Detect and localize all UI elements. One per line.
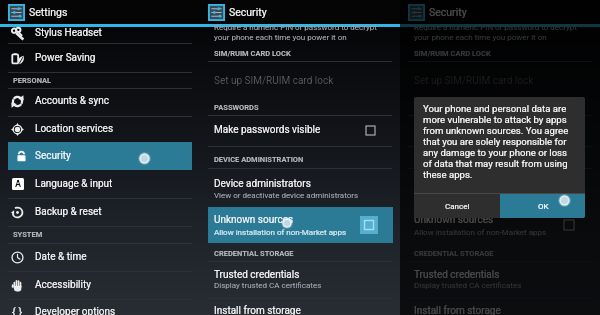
staticText: Stylus Headset [35, 27, 102, 39]
button[interactable]: Make passwords visible [400, 117, 600, 143]
staticText: OK [538, 202, 549, 211]
staticText: Make passwords visible [214, 124, 321, 136]
button[interactable]: OK [500, 194, 585, 218]
staticText: Require a numeric PIN or password to dec… [414, 23, 577, 32]
staticText: CREDENTIAL STORAGE [214, 249, 294, 258]
staticText: Settings [29, 6, 68, 18]
staticText: Trusted credentials [214, 269, 300, 281]
button[interactable]: Accounts & sync [0, 88, 200, 114]
button[interactable]: A [0, 171, 200, 197]
button[interactable]: Settings app icon [0, 0, 200, 24]
button[interactable]: Set up SIM/RUIM card lock [400, 68, 600, 94]
button[interactable]: Trusted credentials [200, 268, 400, 293]
staticText: Security [429, 6, 467, 18]
staticText: Security [35, 150, 71, 162]
button[interactable]: Device administrators [400, 177, 600, 203]
button[interactable]: Security [8, 142, 192, 170]
staticText: Date & time [35, 251, 87, 263]
button[interactable]: Unknown sources [408, 207, 593, 243]
button[interactable]: Accessibility [0, 272, 200, 298]
staticText: Allow installation of non-Market apps [214, 228, 347, 237]
other: Settings app icon [208, 4, 225, 21]
staticText: PASSWORDS [214, 103, 259, 112]
staticText: Developer options [35, 306, 116, 315]
staticText: A [15, 179, 22, 190]
staticText: { } [12, 306, 23, 315]
staticText: Install from storage [414, 305, 501, 315]
staticText: Require a numeric PIN or password to dec… [214, 23, 377, 32]
staticText: SIM/RUIM CARD LOCK [414, 49, 491, 58]
button[interactable]: Location services [0, 116, 200, 142]
staticText: View or deactivate device administrators [214, 191, 359, 200]
staticText: SIM/RUIM CARD LOCK [214, 49, 291, 58]
staticText: Location services [35, 123, 114, 135]
button[interactable]: Unknown sources [208, 207, 393, 243]
staticText: your phone each time you power it on [414, 33, 547, 42]
staticText: Make passwords visible [414, 124, 521, 136]
button[interactable]: Cancel [414, 194, 500, 218]
staticText: Device administrators [414, 178, 511, 190]
staticText: Set up SIM/RUIM card lock [414, 75, 534, 87]
staticText: Display trusted CA certificates [214, 281, 322, 290]
button[interactable]: Install from storage [400, 298, 600, 315]
button[interactable]: Backup & reset [0, 199, 200, 225]
staticText: Allow installation of non-Market apps [414, 228, 547, 237]
staticText: Security [229, 6, 267, 18]
button[interactable]: Install from storage [200, 298, 400, 315]
button[interactable]: Settings app icon [400, 0, 600, 24]
button[interactable]: Make passwords visible [200, 117, 400, 143]
staticText: PERSONAL [13, 76, 52, 85]
staticText: Your phone and personal data are more vu… [423, 103, 578, 180]
button[interactable]: Trusted credentials [400, 268, 600, 293]
staticText: Accounts & sync [35, 95, 109, 107]
button[interactable]: Device administrators [200, 177, 400, 203]
other: Settings app icon [8, 4, 25, 21]
staticText: Unknown sources [214, 214, 294, 226]
button[interactable]: { } [0, 299, 200, 315]
staticText: Trusted credentials [414, 269, 500, 281]
button[interactable]: Stylus Headset [0, 20, 200, 46]
staticText: Unknown sources [414, 214, 494, 226]
staticText: PASSWORDS [414, 103, 459, 112]
button[interactable]: Set up SIM/RUIM card lock [200, 68, 400, 94]
staticText: Cancel [445, 202, 470, 211]
staticText: DEVICE ADMINISTRATION [214, 155, 304, 164]
button[interactable]: Date & time [0, 244, 200, 270]
staticText: Set up SIM/RUIM card lock [214, 75, 334, 87]
staticText: DEVICE ADMINISTRATION [414, 155, 504, 164]
button[interactable]: Settings app icon [200, 0, 400, 24]
staticText: Accessibility [35, 279, 91, 291]
staticText: Language & input [35, 178, 113, 190]
other: Settings app icon [408, 4, 425, 21]
staticText: your phone each time you power it on [214, 33, 347, 42]
staticText: Device administrators [214, 178, 311, 190]
staticText: SYSTEM [13, 230, 43, 239]
staticText: Backup & reset [35, 206, 102, 218]
staticText: Display trusted CA certificates [414, 281, 522, 290]
staticText: CREDENTIAL STORAGE [414, 249, 494, 258]
staticText: View or deactivate device administrators [414, 191, 559, 200]
staticText: Install from storage [214, 305, 301, 315]
staticText: Power Saving [35, 52, 96, 64]
button[interactable]: Power Saving [0, 45, 200, 71]
